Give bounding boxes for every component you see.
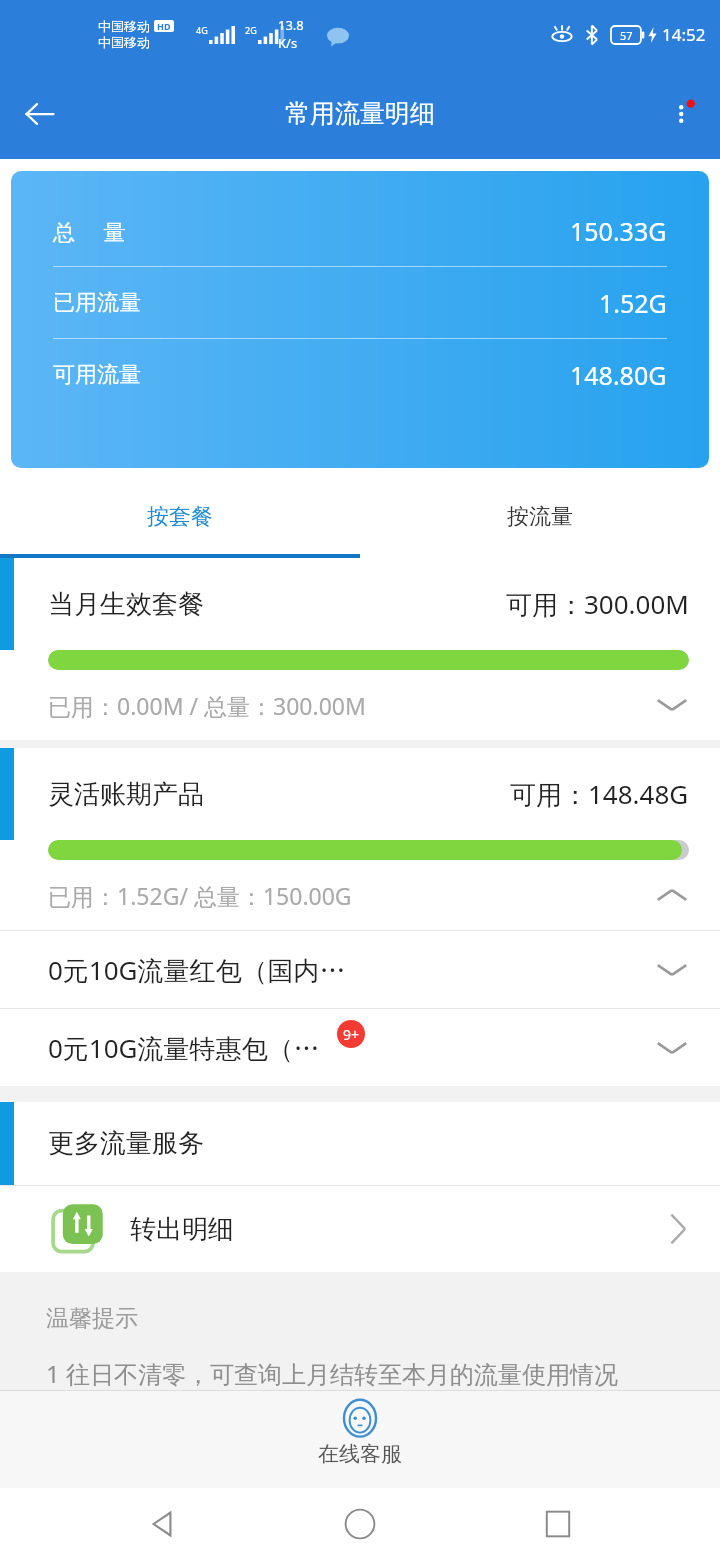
staticText: 57 — [620, 28, 633, 43]
staticText: 已用流量 — [53, 289, 141, 317]
button[interactable]: 当月生效套餐 — [0, 558, 720, 740]
staticText: 0元10G流量红包（国内2/3/4G，有效… — [48, 952, 351, 988]
button[interactable]: 0元10G流量特惠包（有效期7天） — [48, 1009, 689, 1086]
staticText: 1.52G — [599, 286, 667, 320]
staticText: 更多流量服务 — [48, 1127, 204, 1160]
button[interactable]: 按套餐 — [0, 480, 360, 554]
staticText: 0元10G流量特惠包（有效期7天） — [48, 1030, 337, 1066]
staticText: 150.33G — [570, 214, 667, 248]
button[interactable]: 按流量 — [360, 480, 720, 554]
button[interactable]: 返回 — [10, 84, 70, 144]
button[interactable]: 转出明细 — [52, 1186, 689, 1272]
staticText: 4G — [196, 24, 208, 36]
staticText: 已用：0.00M / 总量：300.00M — [48, 690, 366, 721]
button[interactable]: 0元10G流量红包（国内2/3/4G，有效… — [48, 931, 689, 1008]
staticText: 148.80G — [570, 358, 667, 392]
staticText: K/s — [278, 34, 298, 52]
staticText: 9+ — [343, 1025, 360, 1044]
staticText: HD — [157, 20, 171, 32]
staticText: 可用流量 — [53, 361, 141, 389]
button[interactable]: 灵活账期产品 — [0, 748, 720, 930]
staticText: 14:52 — [662, 23, 706, 46]
staticText: 2G — [245, 24, 257, 36]
button[interactable]: 返回 — [126, 1488, 198, 1560]
staticText: 可用：300.00M — [506, 586, 689, 622]
staticText: 按套餐 — [147, 503, 213, 531]
staticText: 温馨提示 — [46, 1304, 138, 1333]
staticText: 按流量 — [507, 503, 573, 531]
staticText: 已用：1.52G/ 总量：150.00G — [48, 880, 352, 911]
button[interactable]: 最近任务 — [522, 1488, 594, 1560]
button[interactable]: 更多 — [652, 84, 712, 144]
button[interactable]: 在线客服 — [0, 1390, 720, 1488]
staticText: 总 量 — [53, 216, 126, 246]
staticText: 灵活账期产品 — [48, 778, 204, 811]
staticText: 在线客服 — [318, 1441, 402, 1467]
button[interactable]: 主页 — [324, 1488, 396, 1560]
staticText: 转出明细 — [130, 1213, 234, 1246]
staticText: 中国移动 — [98, 34, 150, 50]
staticText: 13.8 — [278, 16, 304, 34]
staticText: 可用：148.48G — [510, 776, 689, 812]
staticText: 当月生效套餐 — [48, 588, 204, 621]
staticText: 中国移动 — [98, 18, 150, 34]
staticText: 常用流量明细 — [285, 98, 435, 129]
staticText: 1 往日不清零，可查询上月结转至本月的流量使用情况 — [46, 1357, 618, 1390]
